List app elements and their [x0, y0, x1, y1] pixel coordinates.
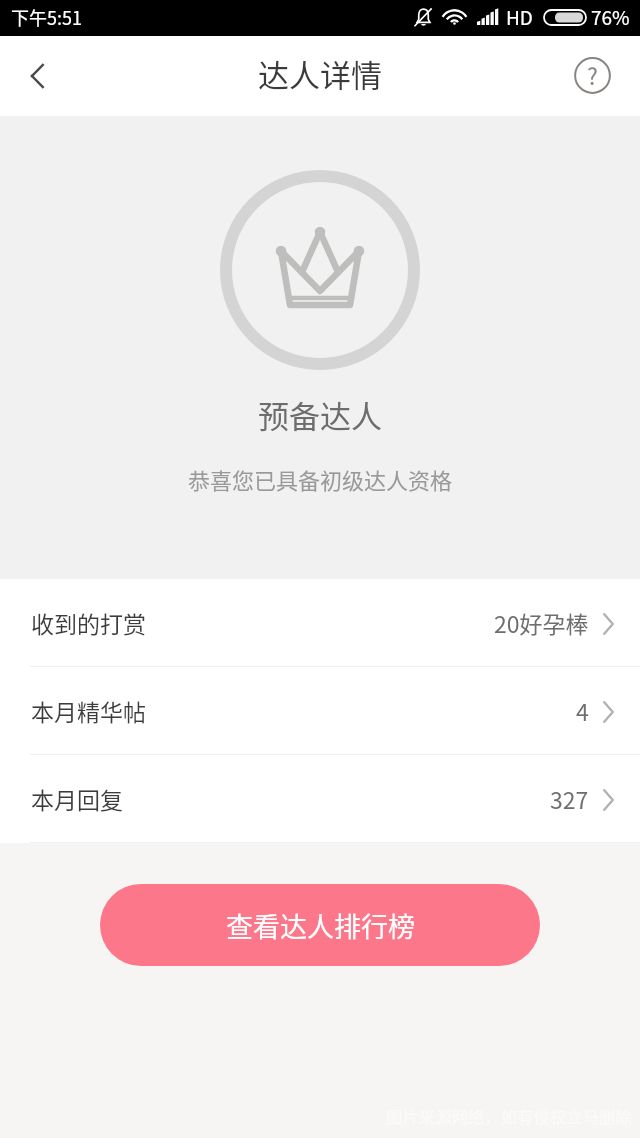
staticText: 收到的打赏: [31, 606, 146, 639]
button[interactable]: 查看达人排行榜: [100, 884, 540, 966]
staticText: 327: [550, 782, 589, 815]
button[interactable]: 本月精华帖: [0, 667, 640, 755]
button[interactable]: Help: [560, 43, 624, 107]
button[interactable]: 本月回复: [0, 755, 640, 843]
staticText: ?: [587, 58, 598, 91]
staticText: 查看达人排行榜: [226, 906, 415, 945]
staticText: 预备达人: [258, 392, 382, 437]
staticText: HD: [506, 3, 533, 31]
staticText: 本月精华帖: [31, 694, 146, 727]
staticText: 20好孕棒: [494, 606, 589, 639]
staticText: 下午5:51: [11, 4, 82, 30]
staticText: 4: [576, 694, 589, 727]
staticText: 恭喜您已具备初级达人资格: [188, 463, 453, 495]
staticText: 本月回复: [31, 782, 123, 815]
staticText: 76%: [591, 3, 630, 31]
button[interactable]: Back: [6, 44, 70, 108]
button[interactable]: 收到的打赏: [0, 579, 640, 667]
staticText: 达人详情: [258, 51, 382, 96]
